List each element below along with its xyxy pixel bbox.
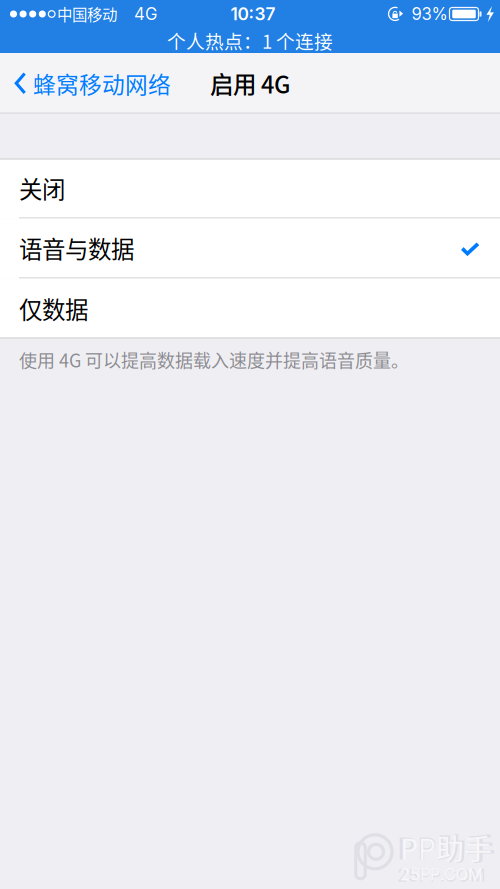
staticText: 蜂窝移动网络 [33, 67, 171, 100]
staticText: 25PP.COM [397, 865, 486, 886]
staticText: 语音与数据 [19, 231, 134, 265]
staticText: 启用 4G [210, 66, 290, 100]
staticText: PP助手 [397, 826, 495, 868]
staticText: 中国移动 [57, 3, 117, 25]
button[interactable]: 语音与数据 [0, 218, 500, 278]
button[interactable]: 关闭 [0, 158, 500, 218]
staticText: 关闭 [19, 171, 65, 205]
staticText: PP助手 [400, 827, 492, 868]
staticText: 仅数据 [19, 291, 88, 325]
staticText: 93% [411, 4, 447, 24]
button[interactable]: 蜂窝移动网络 [0, 61, 179, 105]
staticText: 使用 4G 可以提高数据载入速度并提高语音质量。 [19, 346, 409, 373]
staticText: 4G [134, 4, 157, 24]
staticText: 25PP.COM [400, 865, 482, 884]
button[interactable]: 仅数据 [0, 278, 500, 338]
staticText: 个人热点：1 个连接 [167, 27, 333, 54]
staticText: 10:37 [230, 3, 275, 24]
